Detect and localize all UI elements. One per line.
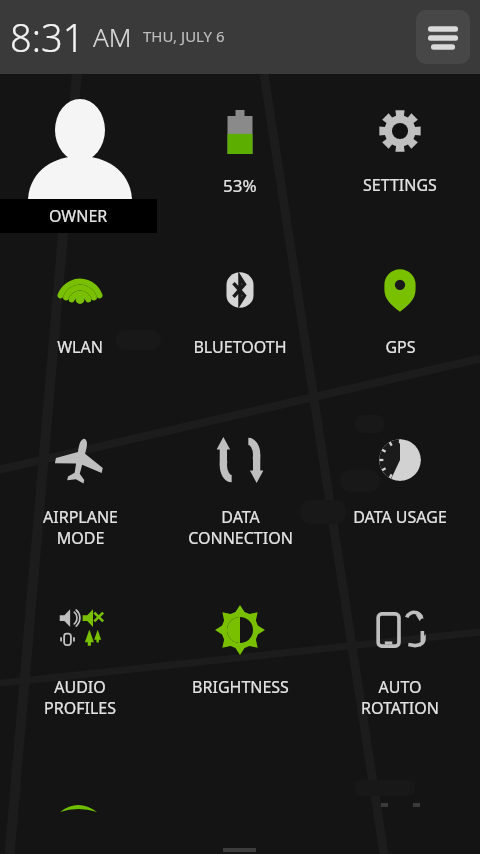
button[interactable]: SETTINGS <box>320 74 480 244</box>
button[interactable]: 53% <box>160 74 320 244</box>
staticText: DATA USAGE <box>353 506 447 528</box>
button[interactable]: AUTO ROTATION <box>320 584 480 754</box>
staticText: DATA CONNECTION <box>188 506 293 549</box>
staticText: BLUETOOTH <box>193 336 287 358</box>
staticText: 8:31 <box>10 11 85 63</box>
staticText: AM <box>93 19 132 54</box>
button[interactable]: GPS <box>320 244 480 414</box>
button[interactable]: AIRPLANE MODE <box>0 414 160 584</box>
staticText: WLAN <box>57 336 103 358</box>
button[interactable] <box>0 74 160 244</box>
staticText: AIRPLANE MODE <box>43 506 118 549</box>
staticText: BRIGHTNESS <box>192 676 289 698</box>
button[interactable]: BRIGHTNESS <box>160 584 320 754</box>
staticText: OWNER <box>49 205 108 227</box>
staticText: THU, JULY 6 <box>143 26 225 46</box>
button[interactable]: DATA CONNECTION <box>160 414 320 584</box>
button[interactable]: AUDIO PROFILES <box>0 584 160 754</box>
button[interactable]: Menu <box>416 10 470 64</box>
staticText: SETTINGS <box>363 174 437 196</box>
button[interactable]: WLAN <box>0 244 160 414</box>
button[interactable]: BLUETOOTH <box>160 244 320 414</box>
staticText: 53% <box>223 174 257 197</box>
staticText: AUTO ROTATION <box>361 676 439 719</box>
button[interactable]: DATA USAGE <box>320 414 480 584</box>
staticText: AUDIO PROFILES <box>44 676 116 719</box>
staticText: GPS <box>385 336 416 358</box>
button[interactable]: OWNER <box>0 199 157 233</box>
